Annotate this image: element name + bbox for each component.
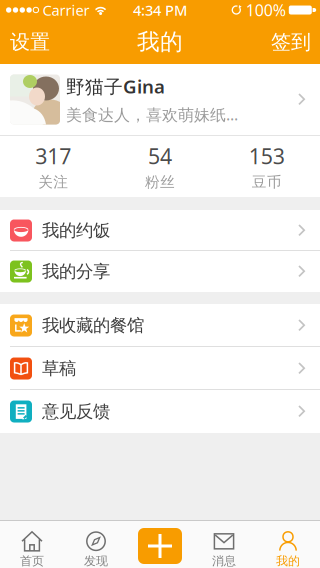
button[interactable]: 草稿: [0, 347, 320, 390]
staticText: 野猫子Gina: [66, 74, 165, 99]
button[interactable]: 317: [0, 142, 107, 191]
staticText: 意见反馈: [42, 401, 110, 422]
staticText: 关注: [38, 173, 68, 191]
staticText: 豆币: [252, 173, 282, 191]
button[interactable]: 我的: [256, 521, 320, 568]
staticText: 317: [35, 142, 71, 170]
staticText: 100%: [246, 0, 286, 21]
button[interactable]: 发布: [128, 526, 192, 562]
staticText: 我的: [276, 554, 300, 568]
staticText: 我的: [137, 28, 183, 56]
button[interactable]: 设置: [10, 30, 50, 54]
staticText: Carrier: [43, 0, 90, 20]
staticText: 美食达人，喜欢萌妹纸...: [66, 104, 238, 125]
button[interactable]: 我的分享: [0, 251, 320, 292]
staticText: 首页: [20, 554, 44, 568]
button[interactable]: 153: [213, 142, 320, 191]
staticText: 设置: [10, 30, 50, 54]
button[interactable]: 发现: [64, 521, 128, 568]
staticText: 4:34 PM: [133, 0, 187, 20]
staticText: 发现: [84, 554, 108, 568]
staticText: 54: [148, 142, 172, 170]
button[interactable]: 54: [107, 142, 213, 191]
button[interactable]: 签到: [271, 30, 311, 54]
staticText: 我收藏的餐馆: [42, 315, 144, 336]
staticText: 粉丝: [145, 173, 175, 191]
button[interactable]: 消息: [192, 521, 256, 568]
staticText: 我的分享: [42, 261, 110, 282]
staticText: 消息: [212, 554, 236, 568]
button[interactable]: 野猫子Gina: [0, 64, 320, 135]
button[interactable]: 我收藏的餐馆: [0, 304, 320, 347]
staticText: 我的约饭: [42, 220, 110, 241]
staticText: 签到: [271, 30, 311, 54]
button[interactable]: 意见反馈: [0, 390, 320, 433]
button[interactable]: 我的约饭: [0, 210, 320, 251]
staticText: 153: [249, 142, 285, 170]
button[interactable]: 首页: [0, 521, 64, 568]
staticText: 草稿: [42, 358, 76, 379]
